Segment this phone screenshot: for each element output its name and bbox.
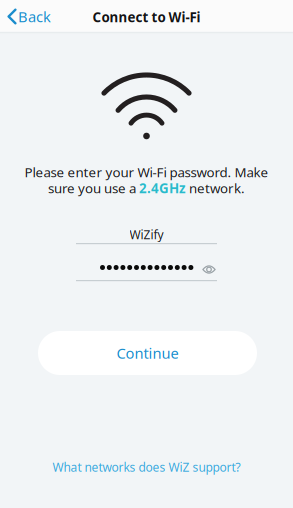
button[interactable]: WiZify xyxy=(76,226,217,244)
staticText: WiZify xyxy=(129,226,163,242)
staticText: Connect to Wi-Fi xyxy=(92,8,200,26)
staticText: network. xyxy=(186,179,245,197)
staticText: What networks does WiZ support? xyxy=(52,459,240,475)
button[interactable]: Back xyxy=(0,0,61,32)
button[interactable]: Show password xyxy=(202,261,216,273)
staticText: 2.4GHz xyxy=(139,179,186,197)
staticText: Continue xyxy=(116,343,178,363)
staticText: sure you use a xyxy=(48,179,139,197)
staticText: Back xyxy=(18,7,51,26)
staticText: Please enter your Wi-Fi password. Make xyxy=(24,163,268,181)
button[interactable]: What networks does WiZ support? xyxy=(0,452,293,482)
button[interactable]: Continue xyxy=(38,331,257,375)
button[interactable] xyxy=(76,255,217,281)
